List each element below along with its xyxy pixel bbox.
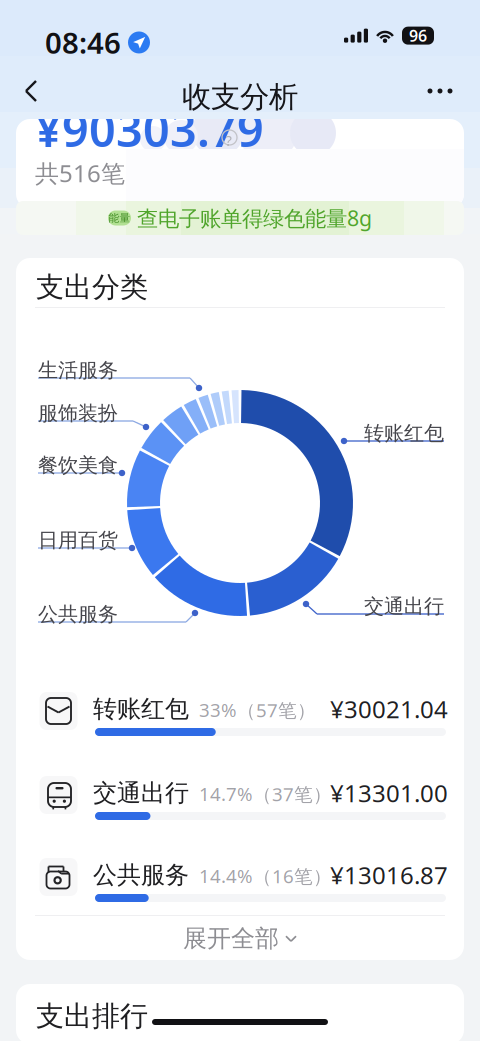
staticText: 能量 xyxy=(108,211,130,224)
staticText: 08:46 xyxy=(45,23,121,62)
staticText: 共516笔 xyxy=(35,157,125,189)
staticText: ¥30021.04 xyxy=(330,693,448,725)
staticText: 转账红包 xyxy=(364,421,444,446)
staticText: 公共服务 xyxy=(93,860,189,890)
staticText: （57笔） xyxy=(237,698,316,722)
staticText: 餐饮美食 xyxy=(38,453,118,478)
staticText: 收支分析 xyxy=(182,79,298,115)
staticText: 转账红包 xyxy=(93,694,189,724)
staticText: ¥13016.87 xyxy=(330,859,448,891)
staticText: 33% xyxy=(189,697,237,722)
button[interactable]: Back xyxy=(8,68,54,114)
staticText: ? xyxy=(225,130,231,150)
staticText: 公共服务 xyxy=(38,602,118,627)
staticText: 96 xyxy=(409,25,427,46)
staticText: 展开全部 xyxy=(183,924,279,953)
staticText: （16笔） xyxy=(253,864,332,888)
button[interactable]: 转账红包 xyxy=(46,698,450,738)
button[interactable]: 公共服务 xyxy=(46,864,450,904)
staticText: 服饰装扮 xyxy=(38,401,118,426)
button[interactable]: 展开全部 xyxy=(16,916,464,961)
staticText: 支出排行 xyxy=(36,999,148,1033)
staticText: ¥13301.00 xyxy=(330,777,448,809)
staticText: 交通出行 xyxy=(364,594,444,619)
staticText: 支出分类 xyxy=(36,270,148,304)
staticText: 交通出行 xyxy=(93,778,189,808)
button[interactable]: 交通出行 xyxy=(46,782,450,822)
staticText: （37笔） xyxy=(253,782,332,806)
staticText: 日用百货 xyxy=(38,528,118,553)
staticText: 14.7% xyxy=(189,781,253,806)
button[interactable]: More xyxy=(416,68,464,114)
staticText: 生活服务 xyxy=(38,358,118,383)
staticText: ¥90303.79 xyxy=(35,98,264,160)
staticText: 14.4% xyxy=(189,863,253,888)
staticText: 查电子账单得绿色能量8g xyxy=(137,204,372,232)
